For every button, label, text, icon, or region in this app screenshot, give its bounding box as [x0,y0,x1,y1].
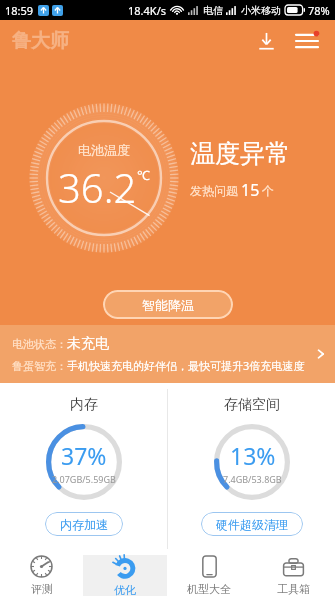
staticText: 37% [61,440,107,471]
staticText: 未充电 [67,335,109,353]
button[interactable]: 工具箱 [251,555,335,596]
staticText: 内存 [70,396,98,414]
staticText: 内存加速 [60,517,108,532]
button[interactable]: 电池状态： [0,325,335,383]
button[interactable]: 智能降温 [103,290,233,319]
staticText: 7.4GB/53.8GB [223,473,282,485]
button[interactable]: 优化 [83,555,167,596]
staticText: 15 [241,179,260,201]
staticText: 手机快速充电的好伴侣，最快可提升3倍充电速度 [67,358,305,373]
staticText: 温度异常 [190,138,290,169]
staticText: 优化 [114,583,136,596]
staticText: 电池状态： [12,337,67,351]
staticText: 鲁大师 [12,29,69,53]
button[interactable]: 机型大全 [167,555,251,596]
staticText: 存储空间 [224,396,280,414]
staticText: 发热问题 [190,183,238,198]
staticText: 智能降温 [142,297,194,313]
staticText: 硬件超级清理 [216,517,288,532]
button[interactable]: Download [251,26,281,56]
staticText: 小米移动 [241,4,281,17]
staticText: 个 [262,183,274,198]
staticText: 13% [230,440,276,471]
button[interactable]: 硬件超级清理 [201,512,303,536]
staticText: 评测 [31,582,53,596]
staticText: 18.4K/s [128,3,166,18]
staticText: 78% [308,3,330,18]
staticText: 鲁蛋智充： [12,359,67,373]
staticText: 2.07GB/5.59GB [52,473,116,485]
staticText: 机型大全 [187,582,231,596]
button[interactable]: Menu [291,25,323,57]
staticText: 电池温度 [78,142,130,158]
staticText: ℃ [137,166,150,184]
button[interactable]: 评测 [0,555,83,596]
button[interactable]: 内存加速 [45,512,123,536]
staticText: 工具箱 [277,582,310,596]
staticText: 电信 [203,4,223,17]
staticText: 18:59 [5,3,34,18]
staticText: 36.2 [58,160,137,214]
